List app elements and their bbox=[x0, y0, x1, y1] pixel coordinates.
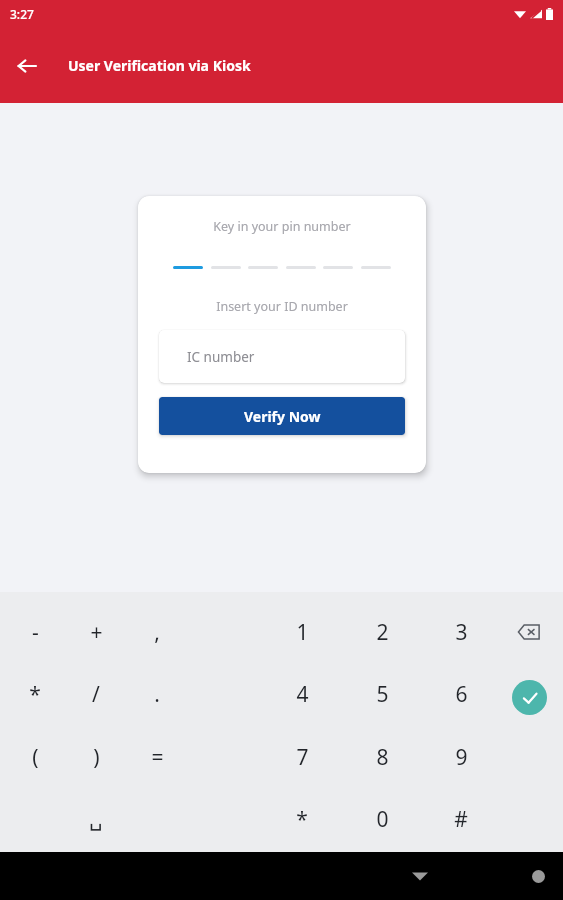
button[interactable]: 6 bbox=[433, 670, 489, 718]
staticText: 3:27 bbox=[10, 6, 34, 22]
staticText: 4 bbox=[296, 680, 309, 709]
staticText: / bbox=[92, 680, 100, 709]
button[interactable]: 0 bbox=[354, 795, 410, 843]
button[interactable] bbox=[173, 266, 203, 269]
button[interactable]: Back bbox=[8, 47, 46, 85]
button[interactable]: Backspace bbox=[507, 610, 551, 654]
staticText: 5 bbox=[376, 680, 389, 709]
staticText: 8 bbox=[376, 743, 389, 772]
staticText: Insert your ID number bbox=[216, 298, 348, 315]
staticText: User Verification via Kiosk bbox=[68, 56, 251, 75]
button[interactable]: Back bbox=[138, 852, 563, 900]
staticText: . bbox=[154, 680, 160, 709]
staticText: 1 bbox=[296, 618, 309, 647]
button[interactable]: IC number bbox=[159, 330, 405, 383]
button[interactable]: * bbox=[274, 795, 330, 843]
button[interactable]: 9 bbox=[433, 733, 489, 781]
staticText: IC number bbox=[187, 348, 255, 366]
staticText: ( bbox=[32, 743, 39, 772]
button[interactable]: 3 bbox=[433, 608, 489, 656]
button[interactable]: 4 bbox=[274, 670, 330, 718]
button[interactable]: ) bbox=[68, 733, 124, 781]
button[interactable]: Enter bbox=[507, 675, 551, 719]
staticText: = bbox=[151, 743, 164, 772]
staticText: 3 bbox=[455, 618, 468, 647]
button[interactable]: 7 bbox=[274, 733, 330, 781]
staticText: # bbox=[454, 805, 468, 834]
button[interactable]: ␣ bbox=[68, 795, 124, 843]
button[interactable]: 1 bbox=[274, 608, 330, 656]
button[interactable]: = bbox=[129, 733, 185, 781]
staticText: ) bbox=[93, 743, 100, 772]
staticText: 2 bbox=[376, 618, 389, 647]
staticText: * bbox=[29, 680, 41, 709]
staticText: * bbox=[296, 805, 308, 834]
staticText: Verify Now bbox=[244, 407, 321, 426]
button[interactable]: . bbox=[129, 670, 185, 718]
button[interactable]: Home bbox=[257, 852, 563, 900]
button[interactable]: # bbox=[433, 795, 489, 843]
button[interactable]: - bbox=[7, 608, 63, 656]
button[interactable]: , bbox=[129, 608, 185, 656]
button[interactable]: ( bbox=[7, 733, 63, 781]
button[interactable]: Verify Now bbox=[159, 397, 405, 435]
staticText: 6 bbox=[455, 680, 468, 709]
staticText: ␣ bbox=[89, 807, 103, 831]
staticText: , bbox=[154, 618, 160, 647]
button[interactable]: * bbox=[7, 670, 63, 718]
button[interactable]: + bbox=[68, 608, 124, 656]
button[interactable]: 8 bbox=[354, 733, 410, 781]
staticText: 0 bbox=[376, 805, 389, 834]
staticText: 9 bbox=[455, 743, 468, 772]
staticText: Key in your pin number bbox=[213, 218, 351, 235]
button[interactable]: Recent apps bbox=[376, 852, 563, 900]
staticText: + bbox=[90, 618, 103, 647]
staticText: 7 bbox=[296, 743, 309, 772]
button[interactable]: / bbox=[68, 670, 124, 718]
button[interactable]: 5 bbox=[354, 670, 410, 718]
staticText: - bbox=[32, 618, 39, 647]
button[interactable]: Switch keyboard bbox=[473, 852, 563, 900]
button[interactable]: 2 bbox=[354, 608, 410, 656]
